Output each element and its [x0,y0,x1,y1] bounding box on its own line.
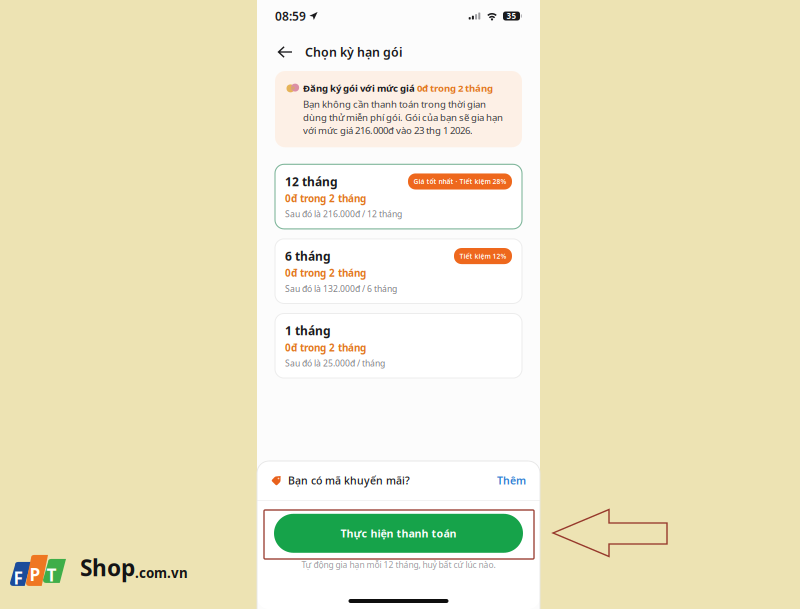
staticText: Thêm [497,473,526,488]
staticText: T [46,563,56,586]
staticText: Thực hiện thanh toán [340,526,456,540]
staticText: F [13,566,23,589]
staticText: Bạn không cần thanh toán trong thời gian… [303,98,503,137]
staticText: .com.vn [135,564,188,582]
button[interactable]: 1 tháng [275,313,522,378]
staticText: Giá tốt nhất · Tiết kiệm 28% [413,177,506,186]
button[interactable]: Thực hiện thanh toán [274,514,523,553]
staticText: Đăng ký gói với mức giá [303,81,417,95]
button[interactable]: Back [275,42,294,61]
staticText: 6 tháng [285,248,331,264]
button[interactable]: 6 tháng [275,239,522,303]
staticText: Sau đó là 25.000đ / tháng [285,357,385,369]
staticText: Sau đó là 132.000đ / 6 tháng [285,283,397,294]
staticText: 0đ trong 2 tháng [285,341,366,354]
staticText: 08:59 [275,8,306,24]
button[interactable]: 12 tháng [275,164,522,229]
staticText: 0đ trong 2 tháng [285,192,366,205]
staticText: Shop [80,552,135,583]
button[interactable]: Bạn có mã khuyến mãi? [257,461,540,500]
staticText: Tiết kiệm 12% [459,251,506,261]
staticText: Sau đó là 216.000đ / 12 tháng [285,208,402,220]
staticText: Chọn kỳ hạn gói [305,44,403,60]
staticText: P [29,562,40,586]
staticText: 12 tháng [285,173,338,190]
staticText: 1 tháng [285,322,331,339]
staticText: 0đ trong 2 tháng [285,266,366,280]
staticText: Bạn có mã khuyến mãi? [288,473,410,488]
staticText: 0đ trong 2 tháng [417,81,493,95]
staticText: 35 [506,11,516,21]
staticText: Tự động gia hạn mỗi 12 tháng, huỷ bất cứ… [301,559,495,570]
